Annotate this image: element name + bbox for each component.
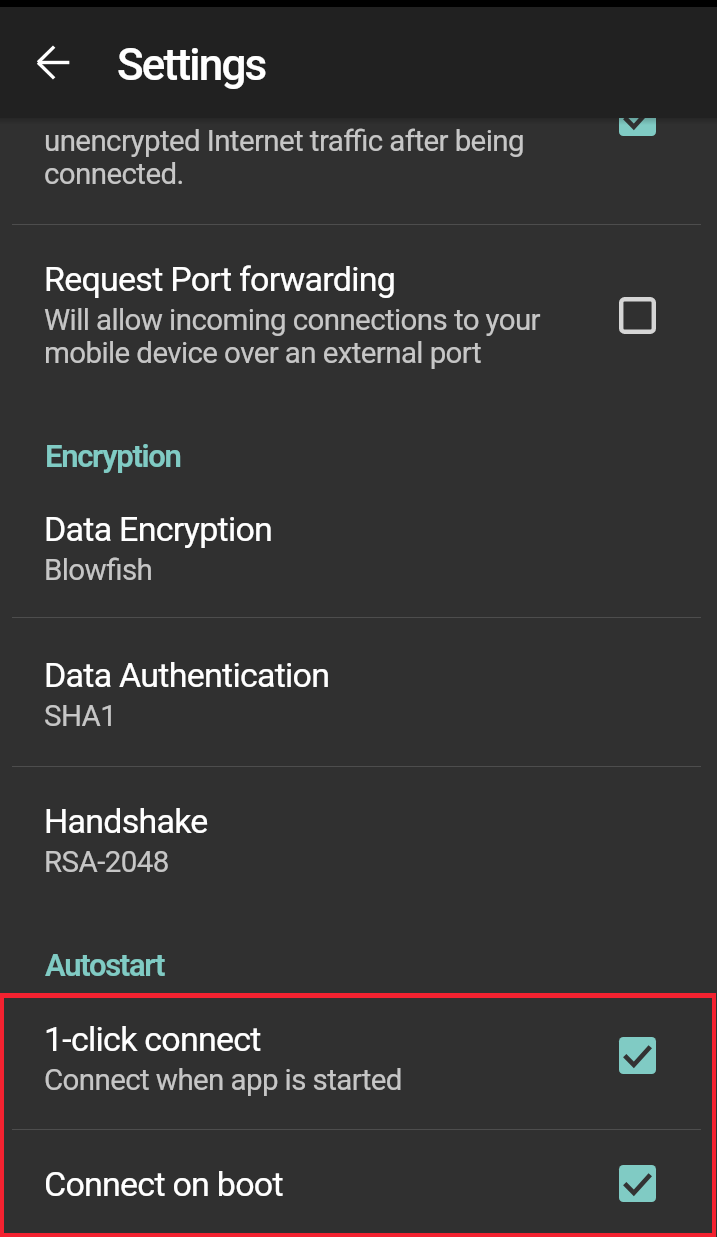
- staticText: 1-click connect: [44, 1019, 261, 1059]
- button[interactable]: Request Port forwarding: [0, 225, 717, 410]
- staticText: SHA1: [44, 699, 117, 734]
- button[interactable]: 1-click connect: [0, 993, 717, 1129]
- staticText: Request Port forwarding: [44, 259, 396, 299]
- staticText: Autostart: [45, 947, 165, 983]
- button[interactable]: Back: [21, 30, 85, 94]
- staticText: Settings: [117, 39, 266, 91]
- button[interactable]: Handshake: [0, 767, 717, 920]
- staticText: Data Encryption: [44, 509, 273, 549]
- button[interactable]: Data Authentication: [0, 618, 717, 766]
- staticText: unencrypted Internet traffic after being…: [44, 124, 524, 191]
- staticText: Data Authentication: [44, 655, 330, 695]
- button[interactable]: Data Encryption: [0, 500, 717, 617]
- button[interactable]: unencrypted Internet traffic after being…: [0, 0, 717, 224]
- staticText: Connect on boot: [44, 1164, 283, 1204]
- staticText: Will allow incoming connections to your …: [44, 303, 541, 370]
- staticText: Handshake: [44, 801, 208, 841]
- staticText: Blowfish: [44, 553, 153, 588]
- button[interactable]: Connect on boot: [0, 1130, 717, 1237]
- staticText: RSA-2048: [44, 845, 169, 880]
- staticText: Connect when app is started: [44, 1063, 402, 1098]
- staticText: Encryption: [45, 438, 181, 474]
